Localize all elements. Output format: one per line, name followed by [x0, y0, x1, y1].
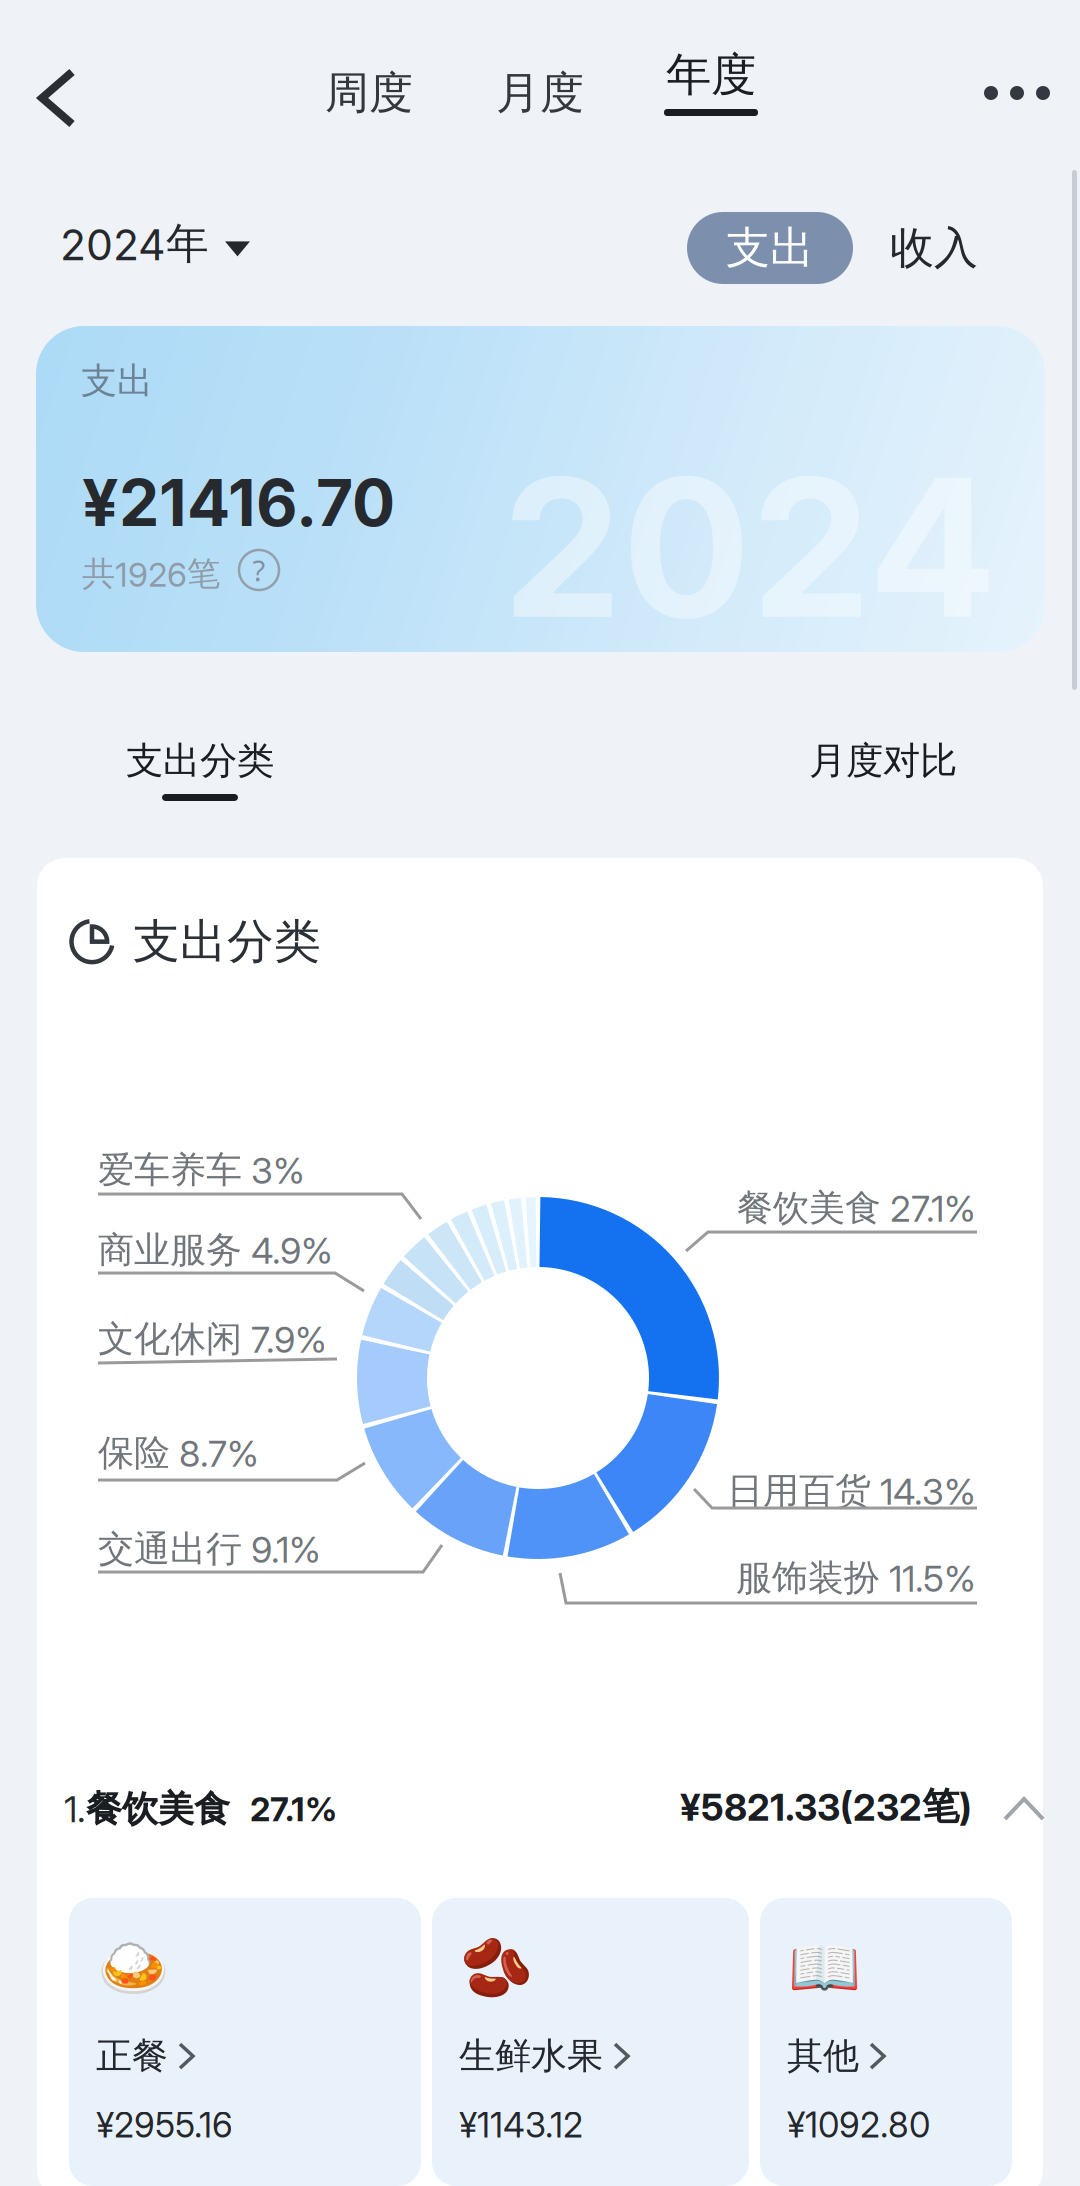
button[interactable]: 月度: [460, 47, 620, 139]
staticText: 2024: [502, 432, 997, 663]
staticText: 月度对比: [809, 738, 957, 784]
staticText: 支出: [726, 221, 814, 275]
staticText: 保险 8.7%: [98, 1430, 259, 1476]
button[interactable]: More: [954, 56, 1080, 130]
staticText: 2024年: [60, 217, 209, 271]
staticText: 爱车养车 3%: [98, 1147, 305, 1193]
staticText: 1.: [64, 1787, 86, 1831]
button[interactable]: Info: [239, 550, 279, 590]
staticText: 月度: [496, 66, 584, 120]
staticText: 🫘: [460, 1934, 533, 2001]
staticText: 收入: [890, 221, 978, 275]
staticText: 日用百货 14.3%: [727, 1468, 976, 1514]
staticText: 支出: [81, 359, 153, 403]
button[interactable]: 月度对比: [801, 738, 965, 818]
staticText: ?: [252, 550, 265, 589]
staticText: 共1926笔: [82, 553, 220, 595]
staticText: ¥5821.33(232笔): [680, 1783, 972, 1830]
button[interactable]: Collapse: [989, 1783, 1059, 1835]
button[interactable]: 🍛: [69, 1898, 421, 2186]
staticText: 正餐: [96, 2034, 168, 2078]
staticText: 生鲜水果: [459, 2034, 603, 2078]
staticText: ¥1143.12: [459, 2104, 583, 2146]
button[interactable]: Back: [12, 42, 102, 154]
button[interactable]: 年度: [631, 47, 791, 139]
staticText: 周度: [325, 66, 413, 120]
staticText: ¥2955.16: [96, 2104, 233, 2146]
button[interactable]: 收入: [884, 212, 984, 284]
staticText: 商业服务 4.9%: [98, 1227, 333, 1273]
staticText: 餐饮美食 27.1%: [737, 1185, 976, 1231]
button[interactable]: 支出: [687, 212, 853, 284]
staticText: 文化休闲 7.9%: [98, 1316, 327, 1362]
staticText: ¥1092.80: [787, 2104, 930, 2146]
staticText: 🍛: [97, 1934, 170, 2001]
staticText: 📖: [788, 1934, 861, 2001]
button[interactable]: 🫘: [432, 1898, 749, 2186]
button[interactable]: 周度: [289, 47, 449, 139]
staticText: 支出分类: [133, 913, 321, 970]
staticText: 其他: [787, 2034, 859, 2078]
staticText: 27.1%: [250, 1789, 337, 1829]
staticText: 年度: [666, 47, 756, 103]
staticText: 服饰装扮 11.5%: [736, 1555, 976, 1601]
button[interactable]: 2024年: [60, 203, 250, 285]
staticText: 交通出行 9.1%: [98, 1526, 321, 1572]
staticText: ¥21416.70: [82, 464, 395, 541]
staticText: 支出分类: [126, 738, 274, 784]
button[interactable]: 📖: [760, 1898, 1012, 2186]
button[interactable]: 支出分类: [118, 738, 282, 818]
staticText: 餐饮美食: [86, 1787, 230, 1831]
